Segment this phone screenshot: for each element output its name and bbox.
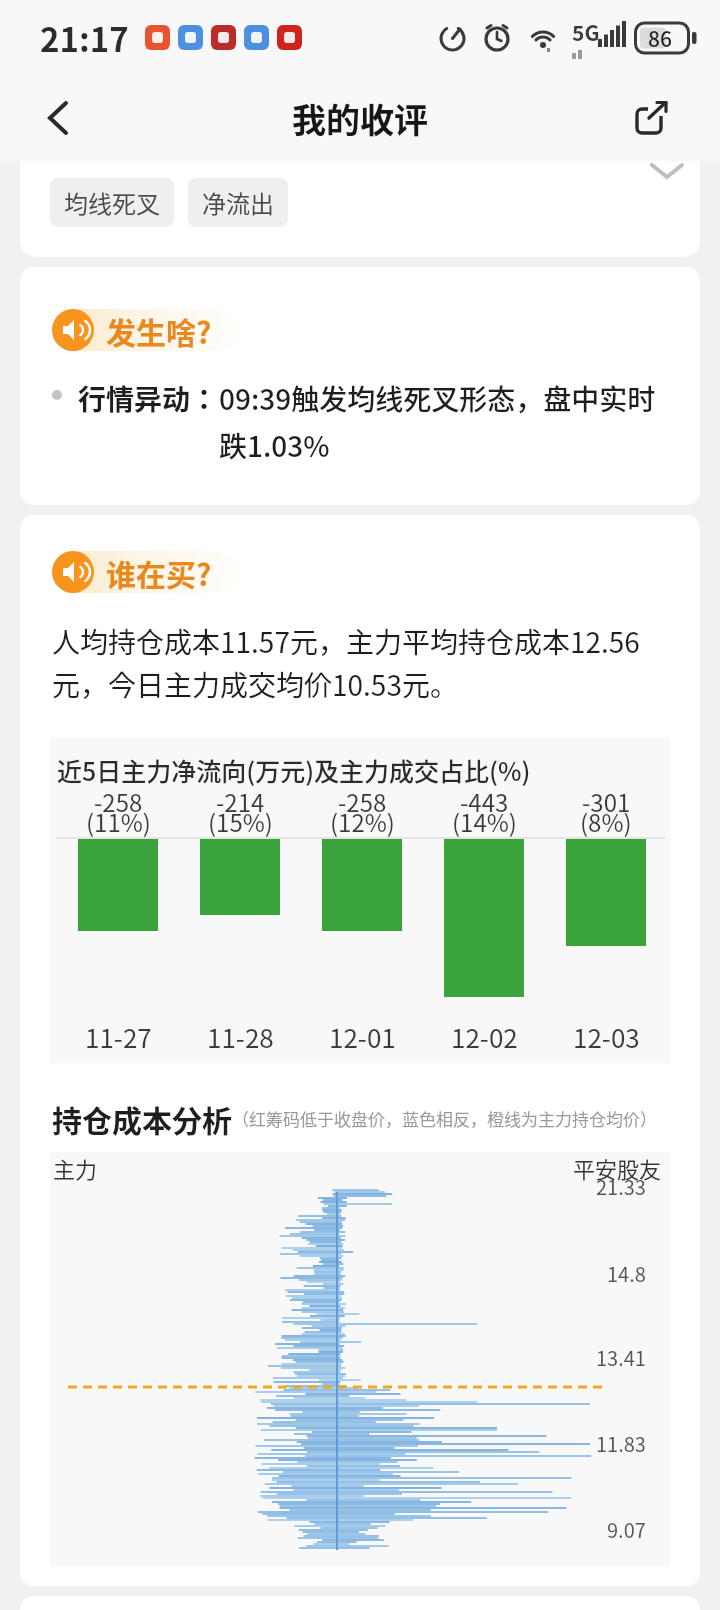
button[interactable]: 净流出 <box>188 178 288 227</box>
staticText: 5G <box>572 17 600 47</box>
staticText: 14.8 <box>607 1259 646 1288</box>
staticText: 近5日主力净流向(万元)及主力成交占比(%) <box>57 752 531 788</box>
staticText: -258 <box>94 784 143 819</box>
staticText: 人均持仓成本11.57元，主力平均持仓成本12.56元，今日主力成交均价10.5… <box>52 621 670 704</box>
button[interactable]: 发生啥? <box>52 309 238 351</box>
staticText: 11.83 <box>596 1429 646 1458</box>
staticText: 主力 <box>53 1152 98 1184</box>
staticText: 12-03 <box>573 1018 640 1056</box>
staticText: (8%) <box>580 804 632 839</box>
staticText: 12-02 <box>451 1018 518 1056</box>
staticText: 行情异动： <box>78 378 219 419</box>
button[interactable]: 谁在买? <box>52 551 238 593</box>
staticText: -301 <box>582 784 631 819</box>
staticText: 谁在买? <box>106 551 212 593</box>
staticText: 平安股友 <box>573 1152 662 1184</box>
button[interactable] <box>630 96 674 140</box>
staticText: (14%) <box>452 804 517 839</box>
staticText: -214 <box>216 784 265 819</box>
staticText: (12%) <box>330 804 395 839</box>
staticText: 11-27 <box>85 1018 152 1056</box>
button[interactable] <box>36 96 80 140</box>
staticText: 12-01 <box>329 1018 396 1056</box>
staticText: 发生啥? <box>106 309 212 351</box>
staticText: 09:39触发均线死叉形态，盘中实时跌1.03% <box>219 378 661 465</box>
staticText: (11%) <box>86 804 151 839</box>
staticText: (15%) <box>208 804 273 839</box>
staticText: 我的收评 <box>292 94 428 143</box>
staticText: 11-28 <box>207 1018 274 1056</box>
staticText: -258 <box>338 784 387 819</box>
button[interactable]: 均线死叉 <box>50 178 174 227</box>
staticText: 21:17 <box>40 14 129 62</box>
staticText: 净流出 <box>202 185 274 220</box>
staticText: 持仓成本分析 <box>52 1097 232 1140</box>
staticText: 13.41 <box>596 1343 646 1372</box>
staticText: -443 <box>460 784 509 819</box>
staticText: 9.07 <box>607 1515 646 1544</box>
staticText: 86 <box>648 23 672 53</box>
staticText: 均线死叉 <box>64 185 160 220</box>
staticText: 21.33 <box>596 1172 646 1201</box>
staticText: （红筹码低于收盘价，蓝色相反，橙线为主力持仓均价） <box>232 1106 657 1131</box>
